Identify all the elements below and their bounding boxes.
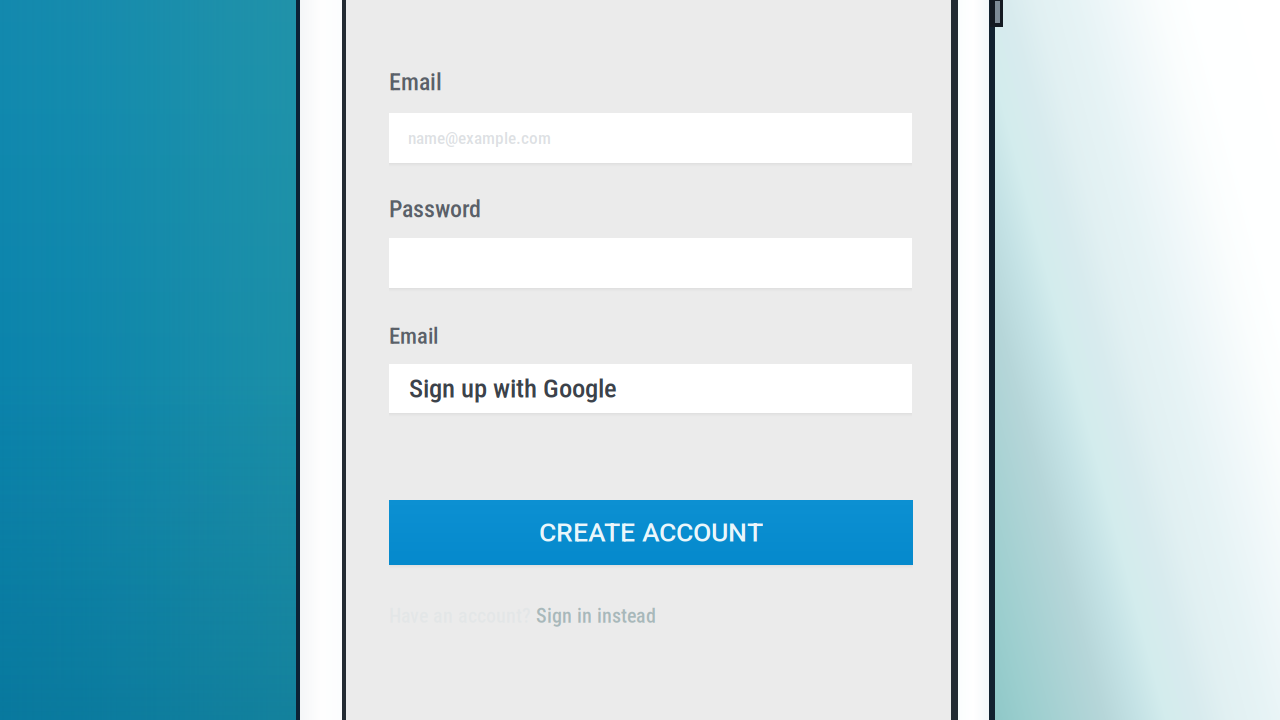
- staticText: Sign up with Google: [409, 373, 617, 404]
- staticText: name@example.com: [408, 128, 551, 148]
- button[interactable]: Sign up with Google: [389, 364, 912, 413]
- staticText: Email: [389, 323, 438, 349]
- button[interactable]: CREATE ACCOUNT: [389, 500, 913, 565]
- staticText: CREATE ACCOUNT: [539, 517, 763, 548]
- staticText: Email: [389, 68, 442, 96]
- button[interactable]: Have an account?: [389, 608, 656, 624]
- button[interactable]: name@example.com: [389, 113, 912, 163]
- staticText: Sign in instead: [536, 604, 656, 628]
- staticText: Password: [389, 195, 481, 223]
